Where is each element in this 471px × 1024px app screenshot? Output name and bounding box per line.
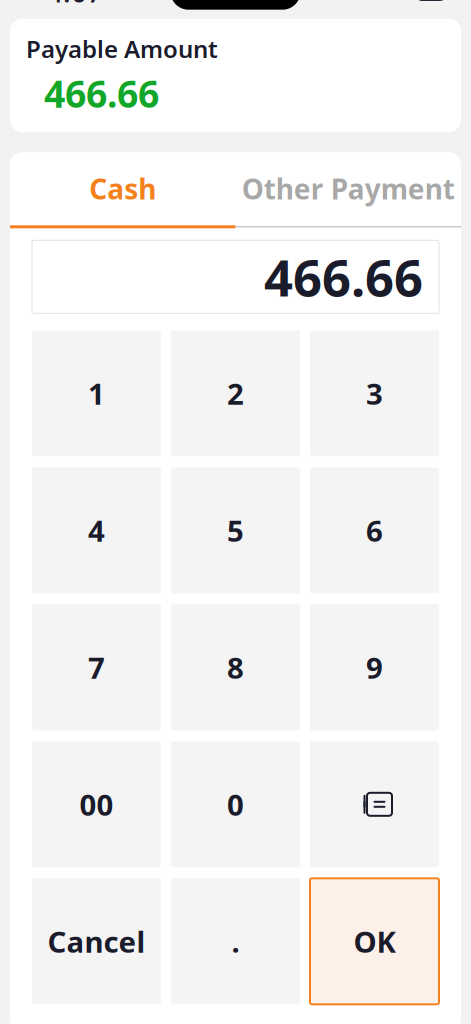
button[interactable]: 4 (32, 467, 161, 593)
staticText: 9 (366, 648, 383, 687)
staticText: OK (353, 922, 395, 961)
staticText: 4 (88, 511, 105, 550)
button[interactable]: Cash (10, 152, 235, 225)
staticText: . (231, 922, 239, 961)
button[interactable]: OK (310, 878, 439, 1004)
button[interactable]: 2 (171, 330, 300, 456)
staticText: 4:07 (47, 0, 103, 10)
button[interactable]: 1 (32, 330, 161, 456)
button[interactable]: 9 (310, 604, 439, 730)
staticText: 466.66 (44, 69, 159, 118)
staticText: 6 (366, 511, 383, 550)
button[interactable]: . (171, 878, 300, 1004)
staticText: 5 (227, 511, 244, 550)
staticText: Payable Amount (26, 33, 218, 65)
button[interactable]: 7 (32, 604, 161, 730)
button[interactable]: 0 (171, 741, 300, 867)
button[interactable]: 00 (32, 741, 161, 867)
button[interactable]: Cancel (32, 878, 161, 1004)
staticText: 8 (227, 648, 244, 687)
button[interactable]: 6 (310, 467, 439, 593)
button[interactable]: 3 (310, 330, 439, 456)
button[interactable]: 8 (171, 604, 300, 730)
button[interactable]: Backspace (310, 741, 439, 867)
button[interactable]: Other Payment (235, 152, 461, 225)
staticText: 2 (227, 374, 244, 413)
staticText: 466.66 (264, 243, 423, 310)
staticText: 1 (88, 374, 105, 413)
staticText: Cancel (47, 922, 145, 961)
staticText: 7 (88, 648, 105, 687)
staticText: 00 (79, 785, 113, 824)
staticText: 3 (366, 374, 383, 413)
button[interactable]: 5 (171, 467, 300, 593)
staticText: Other Payment (242, 170, 455, 207)
staticText: Cash (89, 170, 156, 207)
staticText: 0 (227, 785, 244, 824)
